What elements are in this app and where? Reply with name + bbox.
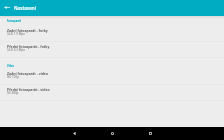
staticText: Nastavení (14, 5, 36, 11)
staticText: SD 480p (7, 91, 19, 95)
staticText: Fotoaparát (7, 19, 21, 22)
staticText: Video (7, 64, 15, 67)
button[interactable]: Home (106, 127, 119, 140)
staticText: Přední fotoaparát - video (7, 87, 50, 92)
button[interactable]: Back (1, 2, 12, 13)
staticText: (4:3) 1.9 Mpx (7, 32, 25, 36)
button[interactable]: Back (68, 127, 81, 140)
staticText: Přední fotoaparát - fotky (7, 44, 50, 49)
staticText: Zadní fotoaparát - video (7, 71, 49, 76)
button[interactable]: Zadní fotoaparát - fotky (0, 26, 224, 42)
button[interactable]: Recent apps (144, 127, 157, 140)
staticText: HD 720p (7, 75, 19, 79)
staticText: Zadní fotoaparát - fotky (7, 28, 48, 33)
button[interactable]: Zadní fotoaparát - video (0, 69, 224, 85)
button[interactable]: Přední fotoaparát - fotky (0, 42, 224, 58)
staticText: (4:3) 0.3 Mpx (7, 48, 25, 52)
button[interactable]: Přední fotoaparát - video (0, 85, 224, 101)
